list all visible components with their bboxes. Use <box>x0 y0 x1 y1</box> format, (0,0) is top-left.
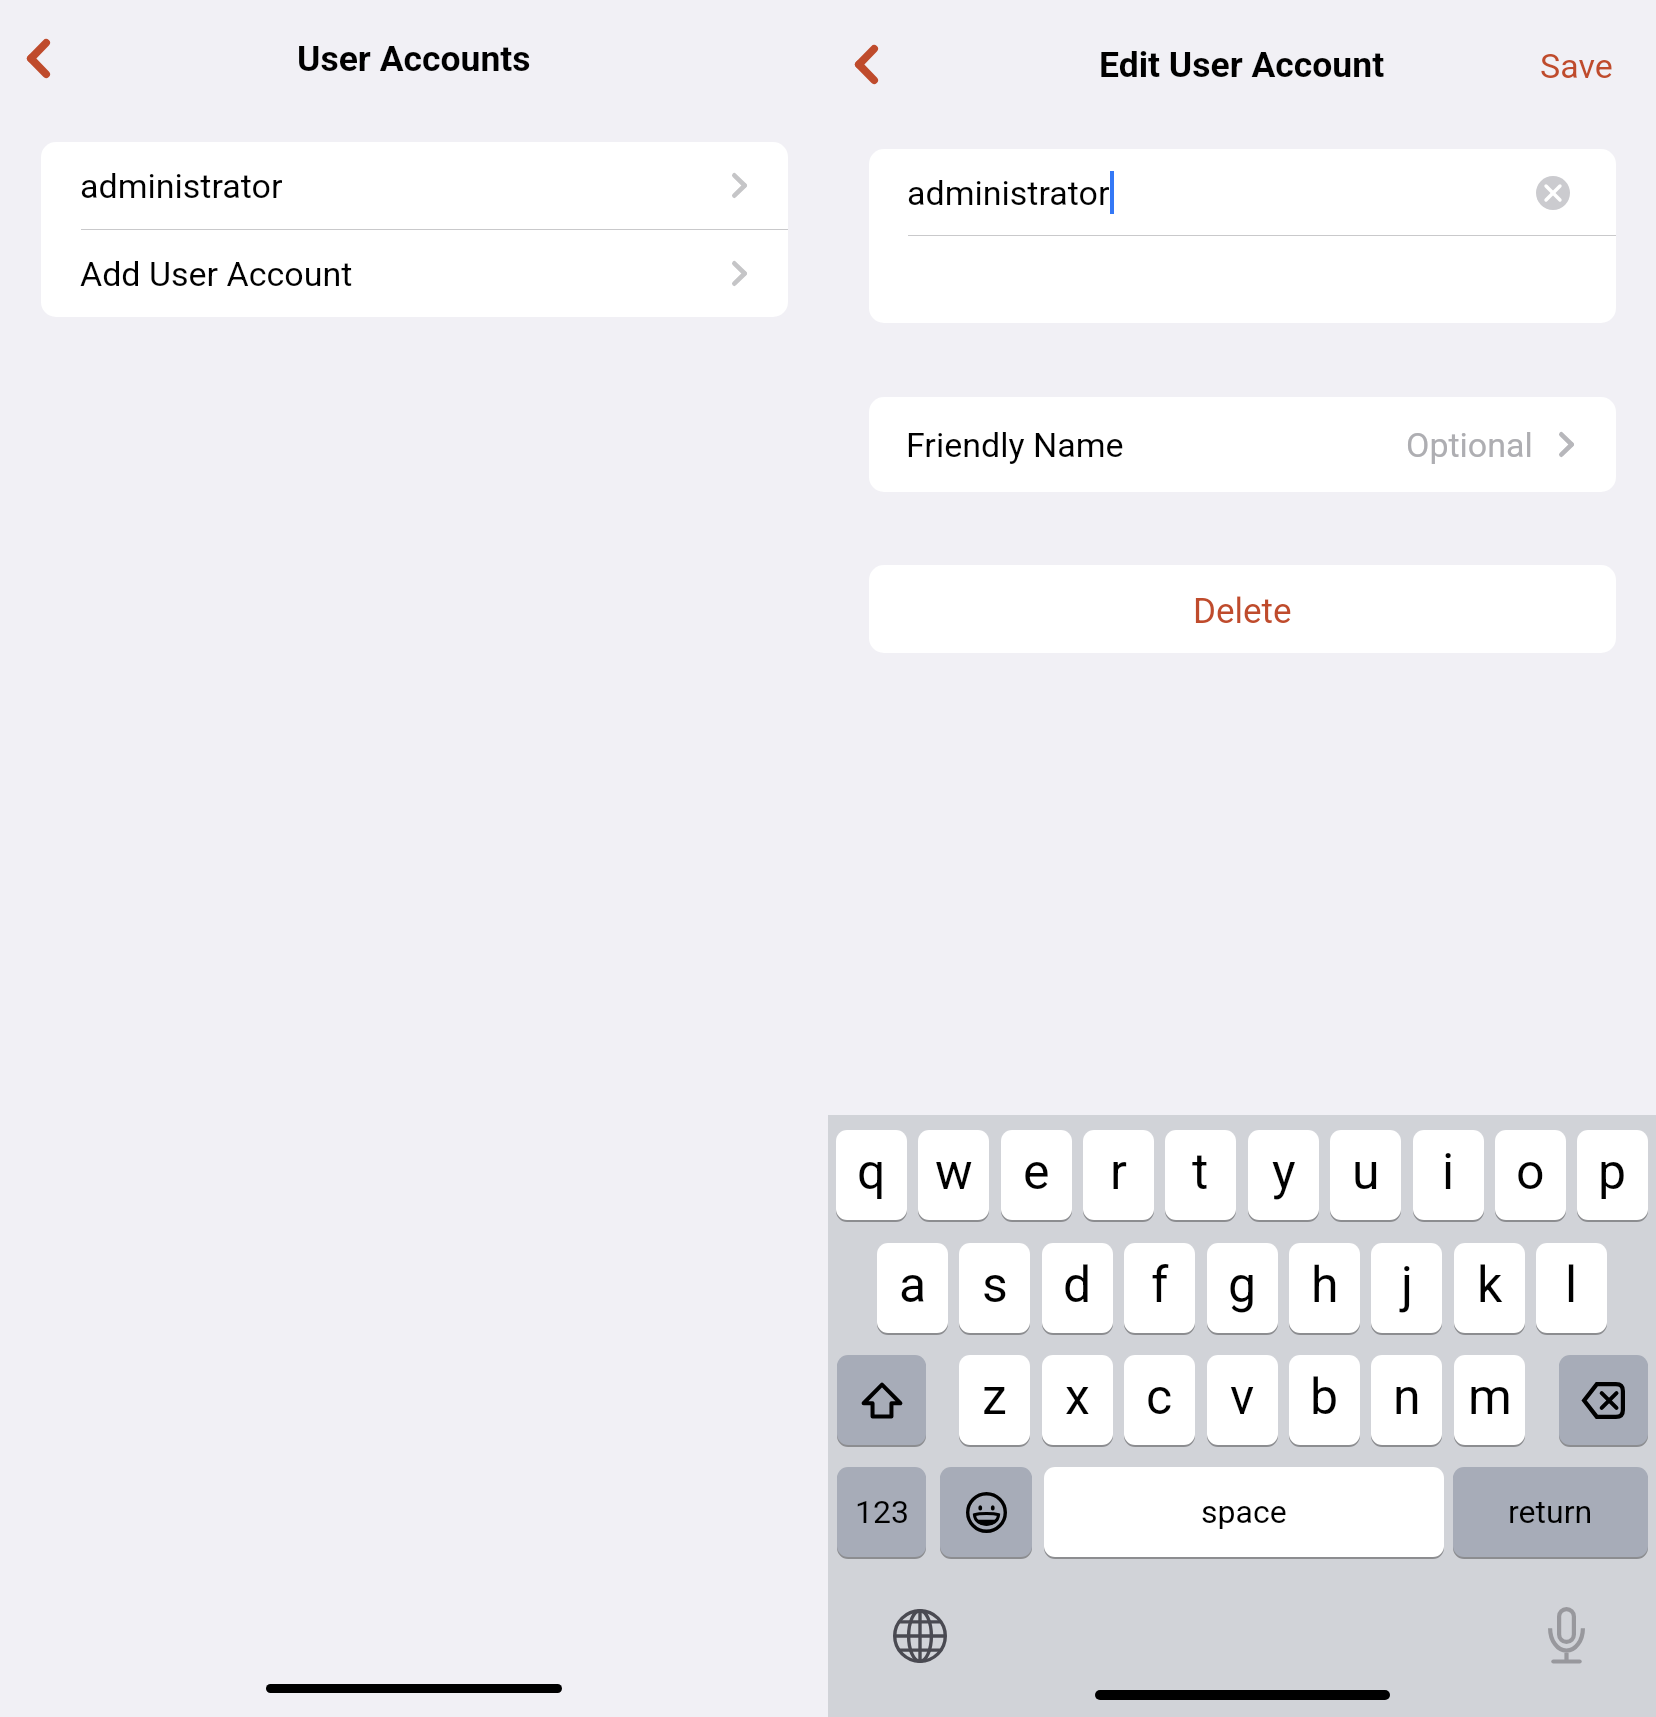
staticText: j <box>1401 1256 1413 1315</box>
staticText: s <box>982 1256 1008 1315</box>
button[interactable]: d <box>1042 1243 1113 1333</box>
staticText: User Accounts <box>297 38 531 80</box>
button[interactable]: 123 <box>837 1467 926 1557</box>
staticText: Optional <box>1406 425 1533 465</box>
button[interactable]: Back <box>828 26 904 102</box>
staticText: q <box>857 1143 886 1202</box>
staticText: x <box>1065 1368 1090 1427</box>
button[interactable]: j <box>1371 1243 1442 1333</box>
button[interactable]: return <box>1453 1467 1648 1557</box>
button[interactable]: m <box>1454 1355 1525 1445</box>
staticText: return <box>1508 1493 1593 1531</box>
staticText: z <box>982 1368 1007 1427</box>
staticText: e <box>1023 1143 1050 1202</box>
staticText: l <box>1565 1256 1578 1315</box>
button[interactable]: x <box>1042 1355 1113 1445</box>
staticText: administrator <box>907 173 1110 213</box>
button[interactable]: Dictation <box>1538 1607 1594 1663</box>
button[interactable]: z <box>959 1355 1030 1445</box>
staticText: m <box>1468 1368 1512 1427</box>
button[interactable]: administrator <box>41 142 788 229</box>
button[interactable]: Add User Account <box>41 230 788 317</box>
staticText: f <box>1151 1256 1169 1315</box>
staticText: g <box>1228 1256 1257 1315</box>
staticText: p <box>1598 1143 1627 1202</box>
button[interactable]: e <box>1001 1130 1072 1220</box>
staticText: n <box>1393 1368 1421 1427</box>
button[interactable]: q <box>836 1130 907 1220</box>
staticText: h <box>1311 1256 1339 1315</box>
button[interactable]: Save <box>1528 41 1624 90</box>
button[interactable]: Clear text <box>1536 176 1570 210</box>
button[interactable]: t <box>1165 1130 1236 1220</box>
button[interactable]: l <box>1536 1243 1607 1333</box>
staticText: v <box>1230 1368 1255 1427</box>
button[interactable]: h <box>1289 1243 1360 1333</box>
staticText: Delete <box>1193 591 1292 632</box>
staticText: r <box>1110 1143 1127 1202</box>
staticText: w <box>935 1143 973 1202</box>
button[interactable]: Delete <box>869 565 1616 653</box>
staticText: i <box>1442 1143 1455 1202</box>
staticText: o <box>1516 1143 1545 1202</box>
button[interactable]: s <box>959 1243 1030 1333</box>
button[interactable]: Emoji <box>940 1467 1032 1557</box>
button[interactable]: v <box>1207 1355 1278 1445</box>
button[interactable]: b <box>1289 1355 1360 1445</box>
staticText: administrator <box>80 166 283 206</box>
button[interactable]: o <box>1495 1130 1566 1220</box>
button[interactable]: i <box>1413 1130 1484 1220</box>
button[interactable]: Shift <box>837 1355 926 1445</box>
staticText: Add User Account <box>80 254 353 294</box>
staticText: b <box>1310 1368 1339 1427</box>
staticText: c <box>1146 1368 1173 1427</box>
button[interactable]: p <box>1577 1130 1648 1220</box>
button[interactable]: Back <box>0 20 76 96</box>
staticText: Save <box>1540 46 1613 86</box>
staticText: space <box>1201 1493 1287 1531</box>
button[interactable]: k <box>1454 1243 1525 1333</box>
button[interactable]: f <box>1124 1243 1195 1333</box>
button[interactable]: u <box>1330 1130 1401 1220</box>
button[interactable]: g <box>1207 1243 1278 1333</box>
button[interactable]: Backspace <box>1559 1355 1648 1445</box>
staticText: u <box>1352 1143 1380 1202</box>
staticText: 123 <box>855 1493 909 1531</box>
button[interactable]: y <box>1248 1130 1319 1220</box>
staticText: y <box>1272 1143 1296 1202</box>
staticText: t <box>1192 1143 1209 1202</box>
staticText: Edit User Account <box>1099 44 1385 86</box>
button[interactable]: space <box>1044 1467 1444 1557</box>
staticText: k <box>1477 1256 1503 1315</box>
button[interactable]: a <box>877 1243 948 1333</box>
button[interactable]: n <box>1371 1355 1442 1445</box>
button[interactable]: r <box>1083 1130 1154 1220</box>
button[interactable]: w <box>918 1130 989 1220</box>
button[interactable]: Friendly Name <box>869 397 1616 492</box>
button[interactable]: Change keyboard <box>893 1609 947 1663</box>
staticText: d <box>1063 1256 1092 1315</box>
staticText: Friendly Name <box>906 425 1124 465</box>
staticText: a <box>899 1256 927 1315</box>
button[interactable]: c <box>1124 1355 1195 1445</box>
